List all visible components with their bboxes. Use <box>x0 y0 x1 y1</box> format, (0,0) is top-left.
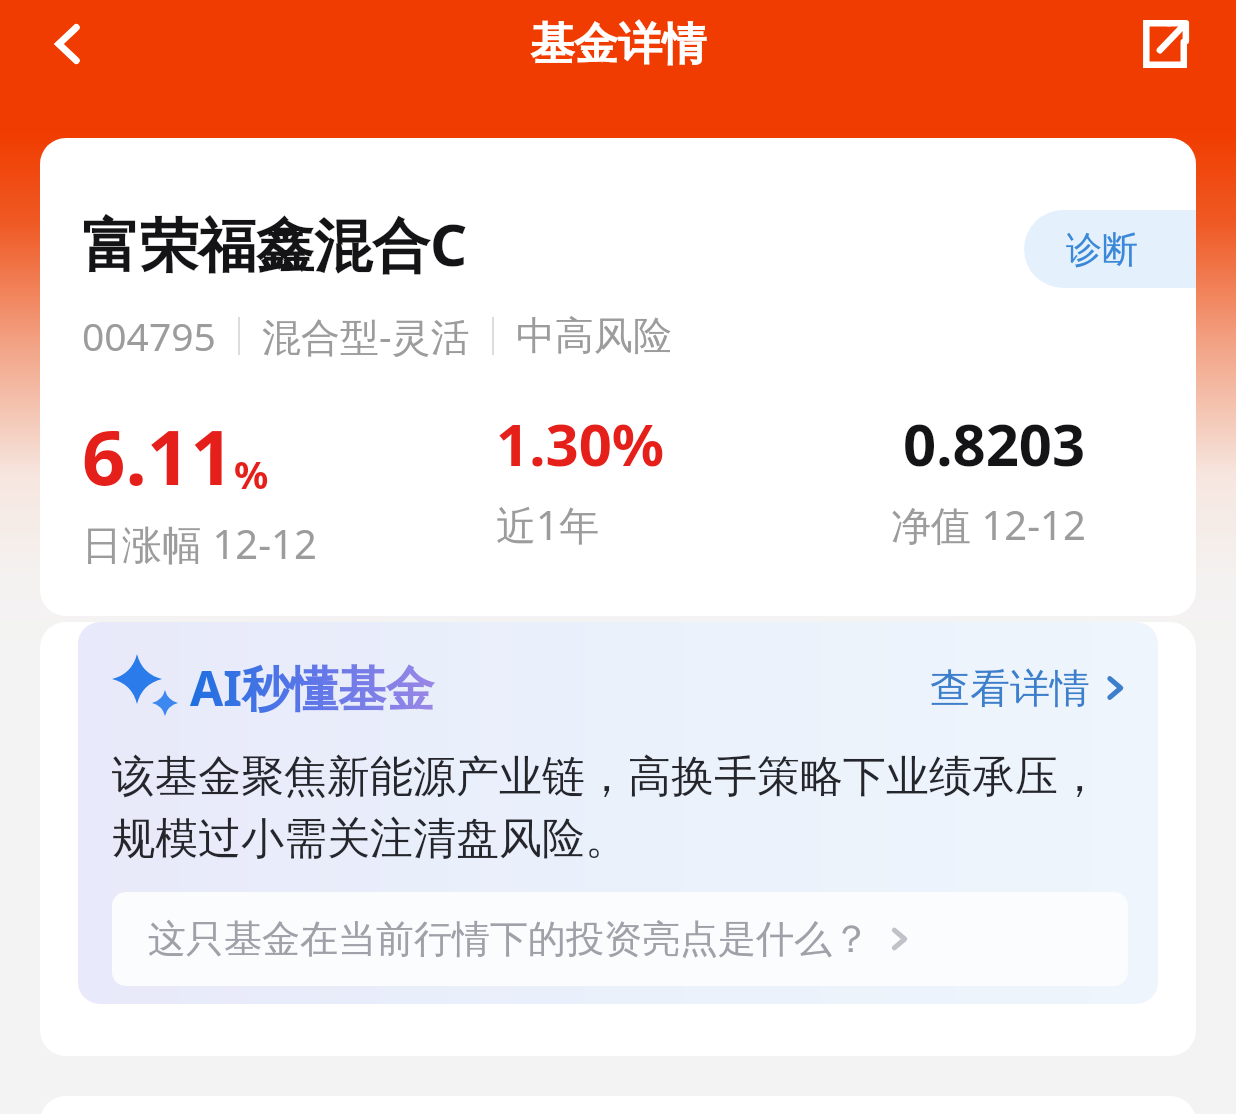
staticText: 6.11 <box>82 404 234 508</box>
button[interactable]: 查看详情 <box>930 663 1128 713</box>
button[interactable]: 这只基金在当前行情下的投资亮点是什么？ <box>112 892 1128 986</box>
staticText: 查看详情 <box>930 663 1090 713</box>
button[interactable]: Share <box>1124 4 1204 84</box>
button[interactable]: 诊断 <box>1024 210 1196 288</box>
staticText: 1.30% <box>496 404 665 483</box>
staticText: 近1年 <box>496 497 599 552</box>
button[interactable]: Back <box>28 4 108 84</box>
staticText: 004795 <box>82 309 216 362</box>
staticText: 诊断 <box>1066 227 1138 272</box>
staticText: 这只基金在当前行情下的投资亮点是什么？ <box>148 915 870 963</box>
staticText: 混合型-灵活 <box>262 309 470 362</box>
staticText: 日涨幅 12-12 <box>82 516 317 571</box>
staticText: % <box>234 448 269 500</box>
staticText: 富荣福鑫混合C <box>82 204 468 283</box>
staticText: 基金详情 <box>530 17 706 72</box>
staticText: 中高风险 <box>516 311 672 360</box>
staticText: AI秒懂基金 <box>190 655 434 721</box>
staticText: 净值 12-12 <box>891 497 1086 552</box>
staticText: 0.8203 <box>903 404 1086 483</box>
staticText: 该基金聚焦新能源产业链，高换手策略下业绩承压，规模过小需关注清盘风险。 <box>112 750 1128 866</box>
